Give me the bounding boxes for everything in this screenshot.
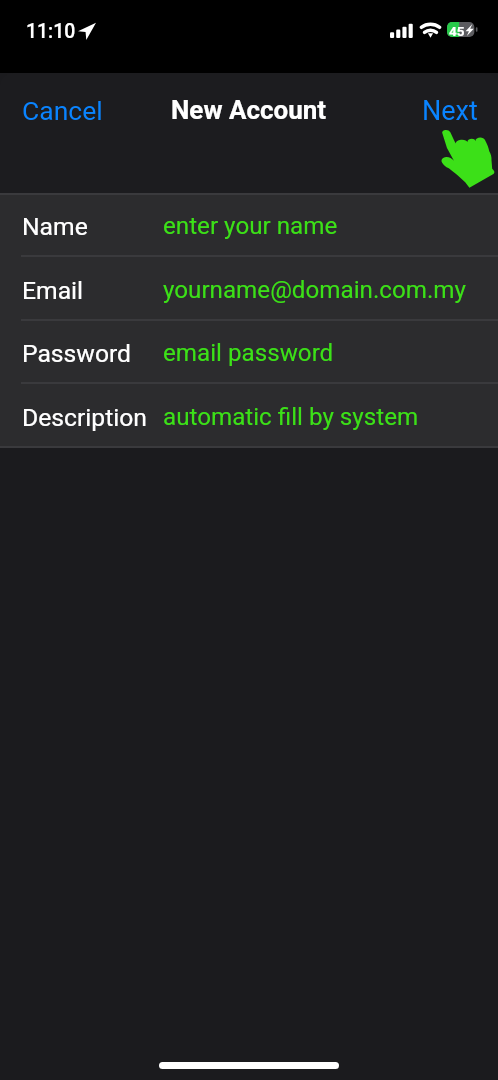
staticText: Name: [22, 212, 88, 241]
staticText: automatic fill by system: [163, 403, 419, 431]
button[interactable]: Next: [404, 88, 496, 134]
staticText: 11:10: [26, 20, 76, 43]
button[interactable]: Email: [0, 259, 498, 323]
staticText: New Account: [171, 95, 327, 125]
button[interactable]: Cancel: [4, 88, 121, 133]
staticText: Cancel: [22, 95, 103, 126]
staticText: 45: [449, 23, 465, 38]
staticText: Description: [22, 403, 147, 432]
staticText: Email: [22, 276, 84, 305]
button[interactable]: Description: [0, 386, 498, 450]
staticText: Password: [22, 339, 132, 368]
button[interactable]: Name: [0, 195, 498, 259]
button[interactable]: Password: [0, 322, 498, 386]
staticText: email password: [163, 339, 334, 367]
staticText: yourname@domain.com.my: [163, 276, 466, 304]
staticText: enter your name: [163, 212, 338, 240]
other: Tap Next: [442, 130, 495, 188]
staticText: Next: [422, 95, 478, 127]
